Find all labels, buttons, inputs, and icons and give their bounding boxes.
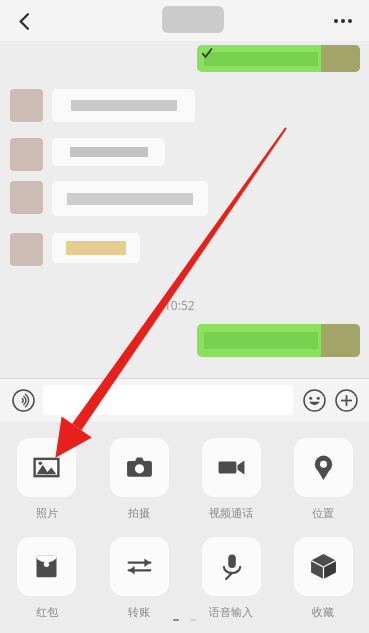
button[interactable]: 视频通话 [185, 438, 277, 520]
button[interactable] [43, 385, 293, 415]
button[interactable]: Voice message [7, 384, 39, 416]
staticText: 位置 [312, 506, 334, 520]
button[interactable]: 红包 [0, 537, 93, 619]
button[interactable] [197, 324, 360, 357]
button[interactable]: 转账 [93, 537, 185, 619]
button[interactable] [10, 233, 140, 266]
button[interactable]: Emoji [298, 384, 330, 416]
button[interactable] [10, 181, 208, 216]
staticText: 转账 [128, 605, 150, 619]
button[interactable]: 位置 [277, 438, 369, 520]
button[interactable]: More functions [330, 384, 362, 416]
staticText: 拍摄 [128, 506, 150, 520]
staticText: 10:52 [164, 297, 195, 313]
button[interactable]: 语音输入 [185, 537, 277, 619]
button[interactable] [197, 45, 360, 72]
button[interactable]: Back [6, 3, 42, 39]
button[interactable]: 拍摄 [93, 438, 185, 520]
button[interactable]: 照片 [0, 438, 93, 520]
button[interactable]: 收藏 [277, 537, 369, 619]
staticText: 照片 [36, 506, 58, 520]
staticText: 收藏 [312, 605, 334, 619]
button[interactable]: More options [325, 3, 361, 39]
button[interactable] [10, 89, 195, 122]
staticText: 语音输入 [209, 605, 253, 619]
staticText: 红包 [36, 605, 58, 619]
button[interactable] [10, 138, 165, 171]
staticText: 视频通话 [209, 506, 253, 520]
